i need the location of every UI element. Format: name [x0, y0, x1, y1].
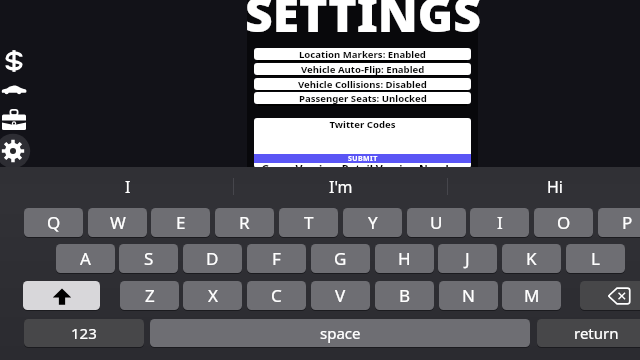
button[interactable]: E [151, 208, 210, 237]
button[interactable]: Vehicle Collisions: Disabled [254, 78, 471, 90]
button[interactable]: T [279, 208, 338, 237]
staticText: I'm [329, 176, 353, 198]
staticText: S [144, 247, 154, 270]
staticText: SUBMIT [348, 154, 378, 163]
staticText: R [239, 211, 250, 234]
staticText: K [526, 247, 537, 270]
button[interactable]: Vehicle Auto-Flip: Enabled [254, 63, 471, 75]
staticText: Y [368, 211, 378, 234]
staticText: Vehicle Collisions: Disabled [298, 78, 427, 90]
button[interactable]: K [502, 244, 561, 273]
staticText: H [398, 247, 411, 270]
staticText: V [335, 284, 346, 307]
staticText: Passenger Seats: Unlocked [299, 92, 427, 104]
staticText: Q [47, 211, 61, 234]
staticText: Twitter Codes [254, 118, 471, 131]
button[interactable]: B [375, 281, 434, 310]
staticText: Hi [547, 176, 563, 198]
button[interactable]: Q [24, 208, 83, 237]
staticText: A [80, 247, 91, 270]
button[interactable]: I [470, 208, 529, 237]
staticText: Game Version: Retail Version Number 3.9.… [254, 161, 471, 168]
button[interactable]: Backspace [580, 281, 640, 310]
staticText: X [208, 284, 218, 307]
staticText: SETTINGS [163, 0, 563, 46]
staticText: return [574, 323, 619, 343]
button[interactable]: J [438, 244, 497, 273]
staticText: C [271, 284, 282, 307]
staticText: D [206, 247, 219, 270]
button[interactable]: R [215, 208, 274, 237]
button[interactable]: Money [0, 47, 28, 75]
staticText: U [430, 211, 443, 234]
button[interactable]: O [534, 208, 593, 237]
staticText: G [334, 247, 347, 270]
button[interactable]: Settings [0, 130, 34, 172]
staticText: space [320, 323, 361, 343]
button[interactable]: 123 [24, 319, 144, 347]
button[interactable]: G [311, 244, 370, 273]
button[interactable]: L [566, 244, 625, 273]
staticText: N [462, 284, 475, 307]
staticText: J [465, 247, 470, 270]
staticText: O [557, 211, 571, 234]
button[interactable]: X [183, 281, 242, 310]
staticText: L [591, 247, 600, 270]
button[interactable]: Passenger Seats: Unlocked [254, 92, 471, 104]
button[interactable]: C [247, 281, 306, 310]
button[interactable]: H [375, 244, 434, 273]
staticText: E [176, 211, 186, 234]
button[interactable]: D [183, 244, 242, 273]
staticText: T [304, 211, 314, 234]
button[interactable]: P [598, 208, 640, 237]
staticText: W [110, 211, 126, 234]
button[interactable]: F [247, 244, 306, 273]
button[interactable]: Y [343, 208, 402, 237]
button[interactable]: S [119, 244, 178, 273]
staticText: P [622, 211, 633, 234]
button[interactable]: V [311, 281, 370, 310]
button[interactable]: Location Markers: Enabled [254, 48, 471, 60]
button[interactable]: Inventory [0, 106, 28, 134]
staticText: Z [145, 284, 155, 307]
staticText: 123 [71, 323, 97, 343]
button[interactable]: I'm [271, 172, 411, 202]
staticText: I [497, 211, 503, 234]
staticText: F [272, 247, 281, 270]
staticText: B [399, 284, 411, 307]
button[interactable]: Z [120, 281, 179, 310]
button[interactable]: U [407, 208, 466, 237]
button[interactable]: SUBMIT [254, 154, 471, 163]
button[interactable]: W [88, 208, 147, 237]
staticText: I [125, 176, 131, 198]
button[interactable]: M [502, 281, 561, 310]
staticText: M [524, 284, 540, 307]
staticText: Location Markers: Enabled [299, 48, 426, 60]
button[interactable]: I [58, 172, 198, 202]
button[interactable]: space [150, 319, 530, 347]
staticText: Vehicle Auto-Flip: Enabled [301, 63, 425, 75]
button[interactable]: Shift [23, 281, 100, 310]
button[interactable]: A [56, 244, 115, 273]
button[interactable]: N [439, 281, 498, 310]
button[interactable]: Vehicles [0, 76, 28, 104]
button[interactable]: return [537, 319, 640, 347]
button[interactable]: Hi [485, 172, 625, 202]
